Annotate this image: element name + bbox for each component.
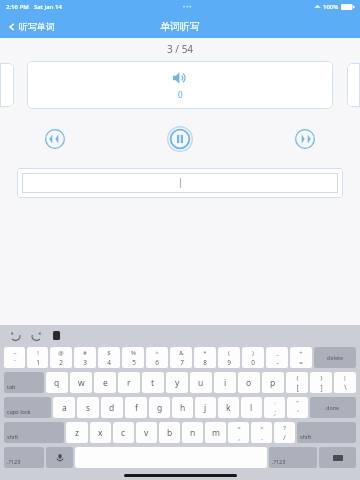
button[interactable]: o — [238, 372, 260, 393]
button[interactable] — [0, 63, 14, 107]
button[interactable]: Undo — [8, 328, 22, 342]
button[interactable]: t — [142, 372, 164, 393]
staticText: m — [212, 427, 220, 439]
button[interactable]: g — [149, 397, 170, 418]
button[interactable]: % — [122, 347, 144, 368]
staticText: shift — [300, 433, 312, 440]
button[interactable]: e — [94, 372, 116, 393]
staticText: < — [237, 424, 241, 432]
button[interactable]: } — [310, 372, 332, 393]
staticText: - — [276, 358, 279, 367]
button[interactable]: Rewind — [44, 128, 66, 150]
button[interactable]: & — [170, 347, 192, 368]
button[interactable]: h — [172, 397, 193, 418]
button[interactable]: n — [182, 422, 203, 443]
staticText: | — [343, 374, 347, 382]
button[interactable]: @ — [50, 347, 72, 368]
button[interactable]: i — [214, 372, 236, 393]
button[interactable]: s — [77, 397, 99, 418]
staticText: v — [144, 427, 149, 439]
button[interactable]: ? — [274, 422, 295, 443]
button[interactable]: < — [228, 422, 249, 443]
button[interactable]: ~ — [4, 347, 25, 368]
button[interactable]: { — [286, 372, 308, 393]
button[interactable]: delete — [314, 347, 356, 368]
button[interactable]: tab — [4, 372, 44, 393]
button[interactable]: > — [251, 422, 272, 443]
button[interactable]: c — [113, 422, 134, 443]
button[interactable]: ^ — [146, 347, 168, 368]
button[interactable]: j — [195, 397, 216, 418]
button[interactable]: ( — [218, 347, 240, 368]
button[interactable]: b — [159, 422, 180, 443]
button[interactable]: x — [90, 422, 111, 443]
button[interactable]: $ — [98, 347, 120, 368]
button[interactable]: 听写单词 — [4, 18, 59, 35]
staticText: c — [121, 427, 126, 439]
button[interactable]: r — [118, 372, 140, 393]
staticText: ~ — [13, 349, 17, 357]
button[interactable]: k — [218, 397, 239, 418]
button[interactable]: Dictate — [46, 447, 73, 468]
button[interactable]: l — [241, 397, 262, 418]
button[interactable]: : — [264, 397, 285, 418]
staticText: \ — [344, 383, 347, 392]
button[interactable]: f — [125, 397, 147, 418]
staticText: 100% — [323, 3, 339, 11]
staticText: > — [260, 424, 264, 432]
button[interactable]: # — [74, 347, 96, 368]
staticText: + — [299, 349, 303, 357]
button[interactable] — [22, 173, 338, 193]
button[interactable]: + — [290, 347, 312, 368]
button[interactable]: m — [205, 422, 226, 443]
staticText: q — [54, 377, 60, 389]
staticText: r — [127, 377, 131, 389]
other: Play audio — [172, 70, 188, 86]
button[interactable]: .?123 — [4, 447, 44, 468]
button[interactable]: p — [262, 372, 284, 393]
button[interactable]: Pause — [166, 125, 194, 153]
button[interactable]: Hide keyboard — [319, 447, 356, 468]
button[interactable]: Play audio — [27, 61, 333, 109]
button[interactable]: v — [136, 422, 157, 443]
staticText: d — [109, 402, 115, 414]
staticText: [ — [296, 383, 299, 392]
button[interactable]: shift — [297, 422, 356, 443]
button[interactable]: d — [101, 397, 123, 418]
staticText: b — [167, 427, 173, 439]
button[interactable] — [347, 63, 360, 107]
staticText: } — [320, 374, 323, 382]
button[interactable]: y — [166, 372, 188, 393]
staticText: x — [98, 427, 103, 439]
button[interactable]: caps lock — [4, 397, 51, 418]
button[interactable]: shift — [4, 422, 64, 443]
button[interactable]: Redo — [29, 328, 43, 342]
staticText: w — [78, 377, 85, 389]
staticText: a — [62, 402, 67, 414]
button[interactable]: Paste — [50, 328, 64, 342]
button[interactable]: w — [70, 372, 92, 393]
button[interactable]: z — [66, 422, 88, 443]
staticText: • • • — [183, 4, 192, 11]
staticText: 听写单词 — [19, 21, 55, 32]
staticText: $ — [107, 349, 111, 357]
button[interactable]: a — [53, 397, 75, 418]
button[interactable]: Forward — [294, 128, 316, 150]
staticText: @ — [58, 349, 64, 357]
button[interactable]: * — [194, 347, 216, 368]
staticText: ' — [297, 408, 299, 417]
button[interactable]: u — [190, 372, 212, 393]
staticText: j — [204, 402, 207, 414]
button[interactable]: ) — [242, 347, 264, 368]
button[interactable]: q — [46, 372, 68, 393]
button[interactable]: ! — [27, 347, 48, 368]
button[interactable]: " — [287, 397, 308, 418]
staticText: g — [157, 402, 163, 414]
button[interactable]: done — [310, 397, 356, 418]
staticText: 2:16 PM — [6, 3, 29, 11]
button[interactable]: .?123 — [269, 447, 317, 468]
button[interactable]: _ — [266, 347, 288, 368]
staticText: 3 — [83, 358, 87, 367]
button[interactable]: | — [334, 372, 356, 393]
